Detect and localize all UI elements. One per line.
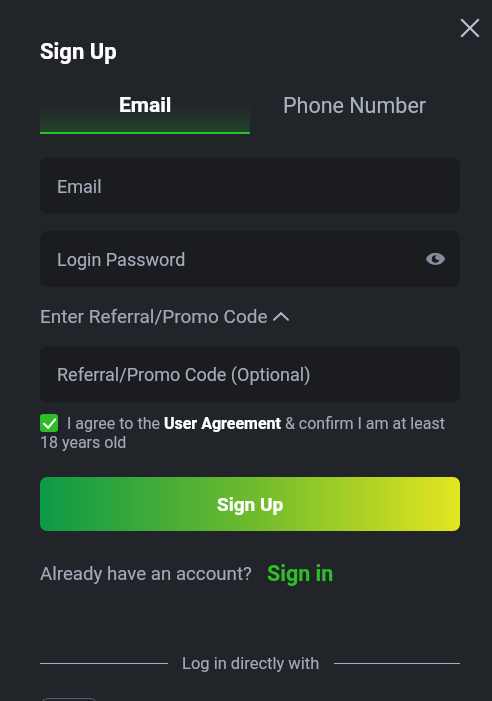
button[interactable]: Log in with Google xyxy=(40,698,98,701)
staticText: Sign Up xyxy=(40,39,117,65)
button[interactable]: Agree to user agreement xyxy=(40,414,58,432)
button[interactable]: Phone Number xyxy=(250,80,460,134)
staticText: Email xyxy=(57,176,102,197)
staticText: Login Password xyxy=(57,249,186,270)
staticText: Sign Up xyxy=(217,493,284,515)
staticText: Log in directly with xyxy=(182,654,320,673)
button[interactable]: Close xyxy=(446,4,492,52)
button[interactable]: Referral/Promo Code (Optional) xyxy=(40,346,460,402)
button[interactable]: Sign Up xyxy=(40,477,460,531)
staticText: Email xyxy=(119,93,172,118)
staticText: Sign in xyxy=(267,561,334,586)
staticText: Phone Number xyxy=(283,93,427,118)
staticText: Already have an account? xyxy=(40,563,252,585)
staticText: I agree to the User Agreement & confirm … xyxy=(67,414,445,433)
button[interactable]: Email xyxy=(40,158,460,214)
button[interactable]: Email xyxy=(40,80,250,134)
button[interactable]: Sign in xyxy=(267,561,334,586)
staticText: Referral/Promo Code (Optional) xyxy=(57,364,311,385)
button[interactable]: Login Password xyxy=(40,231,460,287)
button[interactable]: Show password xyxy=(420,244,450,274)
staticText: 18 years old xyxy=(40,433,127,452)
button[interactable]: Enter Referral/Promo Code xyxy=(40,305,288,327)
staticText: Enter Referral/Promo Code xyxy=(40,305,268,327)
